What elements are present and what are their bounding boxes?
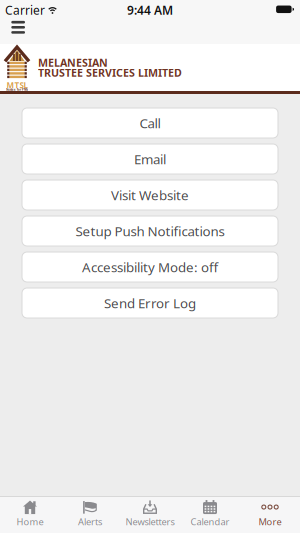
staticText: Call — [139, 114, 160, 132]
staticText: Calendar — [190, 516, 229, 528]
button[interactable]: Call — [22, 108, 278, 138]
button[interactable]: More — [240, 500, 300, 528]
staticText: Carrier — [5, 2, 45, 18]
staticText: More — [258, 516, 281, 528]
staticText: Newsletters — [125, 516, 174, 528]
staticText: TRUSTEE SERVICES LIMITED — [38, 65, 182, 80]
staticText: Setup Push Notifications — [75, 222, 224, 240]
staticText: Trustee for PNG — [6, 88, 28, 91]
button[interactable]: Visit Website — [22, 180, 278, 210]
staticText: MTSL — [6, 80, 27, 90]
staticText: Accessibility Mode: off — [82, 258, 218, 276]
button[interactable]: Setup Push Notifications — [22, 216, 278, 246]
button[interactable]: Send Error Log — [22, 288, 278, 318]
button[interactable]: Calendar — [180, 500, 240, 528]
button[interactable]: Newsletters — [120, 500, 180, 528]
staticText: Home — [16, 516, 43, 528]
staticText: Visit Website — [111, 186, 189, 204]
button[interactable]: Email — [22, 144, 278, 174]
button[interactable]: Alerts — [60, 500, 120, 528]
button[interactable]: Menu — [0, 26, 25, 38]
staticText: Email — [134, 150, 166, 168]
button[interactable]: Home — [0, 500, 60, 528]
staticText: Send Error Log — [104, 294, 196, 312]
staticText: MELANESIAN — [38, 55, 108, 70]
staticText: 9:44 AM — [127, 2, 173, 18]
staticText: Alerts — [78, 516, 102, 528]
button[interactable]: Accessibility Mode: off — [22, 252, 278, 282]
